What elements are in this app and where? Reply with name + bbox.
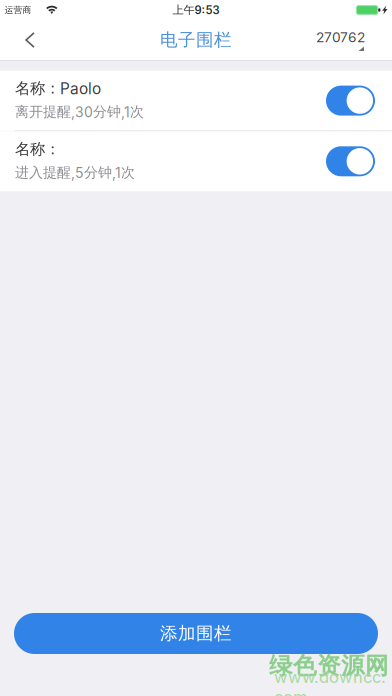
staticText: 进入提醒,5分钟,1次 <box>15 164 135 181</box>
button[interactable]: 270762 <box>316 29 392 51</box>
staticText: 名称： <box>15 139 60 159</box>
staticText: 电子围栏 <box>160 29 232 51</box>
button[interactable]: 名称： <box>0 131 392 191</box>
staticText: www.downcc.com <box>274 667 386 696</box>
staticText: 270762 <box>316 29 365 46</box>
staticText: 离开提醒,30分钟,1次 <box>15 103 144 121</box>
button[interactable]: 添加围栏 <box>14 613 378 654</box>
staticText: 运营商 <box>5 4 32 16</box>
staticText: 绿色资源网 <box>269 651 389 681</box>
button[interactable]: 名称：Paolo <box>0 71 392 131</box>
button[interactable]: Back <box>0 20 48 60</box>
staticText: 添加围栏 <box>160 622 232 644</box>
staticText: 上午9:53 <box>172 3 219 17</box>
staticText: 名称：Paolo <box>15 79 101 98</box>
